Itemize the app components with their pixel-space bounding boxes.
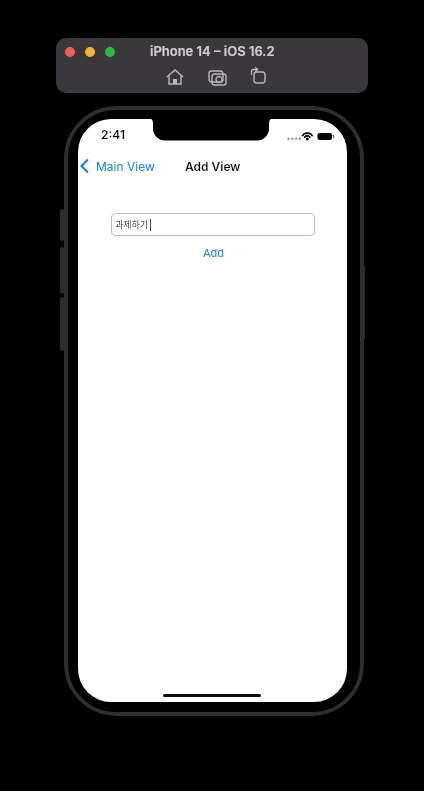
staticText: Add View bbox=[185, 159, 241, 174]
staticText: Add bbox=[203, 246, 225, 259]
button[interactable] bbox=[205, 66, 231, 92]
staticText: iPhone 14 – iOS 16.2 bbox=[150, 43, 275, 59]
button[interactable]: Add bbox=[184, 245, 244, 259]
button[interactable] bbox=[248, 66, 272, 90]
staticText: 과제하기 bbox=[115, 218, 149, 231]
button[interactable] bbox=[85, 47, 95, 57]
staticText: Main View bbox=[96, 159, 155, 174]
staticText: 2:41 bbox=[101, 127, 125, 142]
button[interactable]: Main View bbox=[80, 158, 155, 174]
button[interactable] bbox=[65, 47, 75, 57]
button[interactable] bbox=[163, 66, 187, 90]
button[interactable]: 과제하기 bbox=[111, 213, 315, 236]
button[interactable] bbox=[105, 47, 115, 57]
